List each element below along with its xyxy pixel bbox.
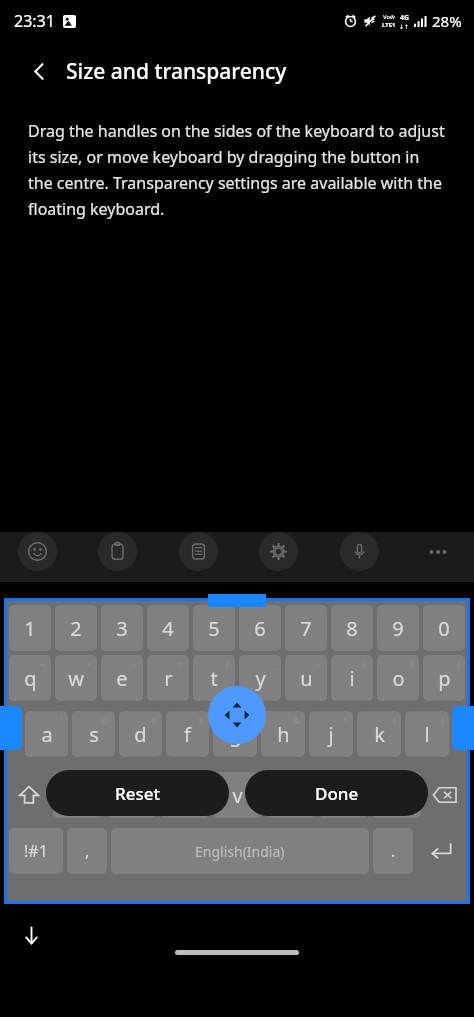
staticText: 8 <box>346 615 358 642</box>
button[interactable]: % <box>213 711 257 757</box>
staticText: g <box>229 721 242 748</box>
button[interactable]: Resize keyboard left <box>0 706 22 750</box>
staticText: f <box>184 721 191 748</box>
staticText: 0 <box>438 615 450 642</box>
button[interactable]: & <box>261 711 305 757</box>
staticText: e <box>116 665 128 692</box>
button[interactable]: 9 <box>377 605 419 651</box>
staticText: & <box>293 714 300 726</box>
button[interactable]: @ <box>72 711 115 757</box>
button[interactable]: Done <box>245 770 428 816</box>
button[interactable]: ÷ <box>101 655 143 701</box>
staticText: y <box>255 665 266 692</box>
staticText: p <box>438 665 451 692</box>
button[interactable]: ( <box>357 711 401 757</box>
button[interactable]: ; <box>266 772 315 818</box>
staticText: u <box>300 665 313 692</box>
button[interactable]: + <box>9 655 51 701</box>
staticText: , <box>85 840 90 862</box>
staticText: j <box>328 721 334 748</box>
staticText: n <box>337 782 350 809</box>
button[interactable]: 3 <box>101 605 143 651</box>
button[interactable]: Resize keyboard right <box>452 706 474 750</box>
button[interactable]: : <box>213 772 262 818</box>
button[interactable]: Notes <box>179 532 218 571</box>
button[interactable]: > <box>331 655 373 701</box>
button[interactable]: ) <box>405 711 449 757</box>
button[interactable]: . <box>373 828 413 874</box>
staticText: h <box>277 721 290 748</box>
button[interactable]: 0 <box>423 605 465 651</box>
button[interactable]: [ <box>377 655 419 701</box>
button[interactable]: , <box>67 828 107 874</box>
button[interactable]: !#1 <box>9 828 63 874</box>
staticText: 5 <box>208 615 220 642</box>
staticText: a <box>41 721 53 748</box>
button[interactable]: 4 <box>147 605 189 651</box>
staticText: 2 <box>70 615 82 642</box>
button[interactable]: × <box>55 655 97 701</box>
button[interactable]: = <box>147 655 189 701</box>
staticText: i <box>349 665 355 692</box>
button[interactable]: Back <box>22 54 56 88</box>
button[interactable]: 6 <box>239 605 281 651</box>
button[interactable]: ! <box>25 711 68 757</box>
button[interactable]: Enter <box>417 828 465 874</box>
button[interactable]: 7 <box>285 605 327 651</box>
button[interactable]: More options <box>420 534 456 570</box>
button[interactable]: ' <box>107 772 156 818</box>
button[interactable]: ? <box>372 772 421 818</box>
staticText: 4 <box>162 615 174 642</box>
button[interactable]: - <box>53 772 103 818</box>
staticText: 4G <box>400 13 410 23</box>
button[interactable]: 5 <box>193 605 235 651</box>
button[interactable]: Clipboard <box>98 532 137 571</box>
button[interactable]: Emoji <box>18 532 57 571</box>
button[interactable]: Hide keyboard <box>14 918 48 952</box>
button[interactable]: Settings <box>259 532 298 571</box>
button[interactable]: / <box>193 655 235 701</box>
staticText: ! <box>60 714 63 726</box>
button[interactable]: " <box>160 772 209 818</box>
staticText: Size and transparency <box>66 57 287 86</box>
button[interactable]: 8 <box>331 605 373 651</box>
staticText: # <box>151 714 157 726</box>
staticText: q <box>24 665 37 692</box>
staticText: t <box>210 665 218 692</box>
button[interactable]: < <box>285 655 327 701</box>
button[interactable]: Backspace <box>423 772 467 818</box>
button[interactable]: 1 <box>9 605 51 651</box>
button[interactable]: , <box>319 772 368 818</box>
button[interactable]: * <box>309 711 353 757</box>
button[interactable]: Move keyboard <box>208 686 266 744</box>
staticText: Reset <box>115 782 161 805</box>
staticText: Drag the handles on the sides of the key… <box>28 120 446 220</box>
staticText: @ <box>101 714 110 726</box>
staticText: k <box>374 721 385 748</box>
button[interactable]: Voice input <box>340 532 379 571</box>
staticText: ( <box>393 714 396 726</box>
button[interactable]: English(India) <box>111 828 369 874</box>
staticText: x <box>126 782 137 809</box>
staticText: l <box>424 721 430 748</box>
staticText: 23:31 <box>14 10 55 32</box>
staticText: / <box>226 658 230 670</box>
button[interactable]: Shift <box>7 772 51 818</box>
button[interactable]: _ <box>239 655 281 701</box>
staticText: 3 <box>116 615 128 642</box>
button[interactable]: $ <box>166 711 209 757</box>
staticText: + <box>40 658 46 670</box>
staticText: 7 <box>300 615 312 642</box>
button[interactable]: Reset <box>46 770 229 816</box>
staticText: ) <box>441 714 444 726</box>
button[interactable]: # <box>119 711 162 757</box>
staticText: o <box>392 665 405 692</box>
button[interactable]: 2 <box>55 605 97 651</box>
button[interactable]: ] <box>423 655 465 701</box>
